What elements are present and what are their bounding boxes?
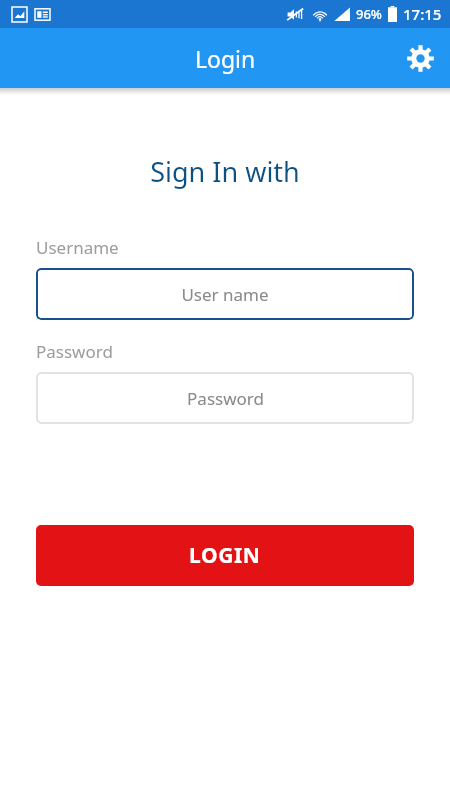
staticText: Password — [36, 340, 113, 363]
staticText: Username — [36, 236, 119, 259]
button[interactable]: Settings — [396, 34, 444, 82]
staticText: 17:15 — [403, 4, 442, 24]
staticText: Password — [187, 387, 264, 410]
staticText: Login — [195, 43, 256, 74]
staticText: 96% — [356, 5, 382, 23]
staticText: User name — [181, 283, 269, 306]
button[interactable]: LOGIN — [36, 525, 414, 586]
button[interactable]: User name — [36, 268, 414, 320]
button[interactable]: Password — [36, 372, 414, 424]
staticText: LOGIN — [189, 541, 261, 570]
staticText: Sign In with — [150, 153, 300, 190]
